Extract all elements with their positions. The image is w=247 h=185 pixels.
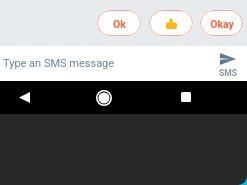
button[interactable]: Okay: [200, 10, 243, 36]
staticText: SMS: [219, 68, 237, 78]
button[interactable]: Back: [14, 87, 35, 108]
button[interactable]: Thumbs up: [149, 10, 193, 36]
button[interactable]: Ok: [97, 10, 141, 36]
button[interactable]: Home: [93, 87, 114, 108]
staticText: Ok: [113, 18, 126, 30]
button[interactable]: Recent apps: [175, 87, 196, 108]
button[interactable]: Send SMS: [209, 46, 247, 81]
staticText: Okay: [210, 18, 234, 30]
staticText: Type an SMS message: [3, 57, 115, 70]
